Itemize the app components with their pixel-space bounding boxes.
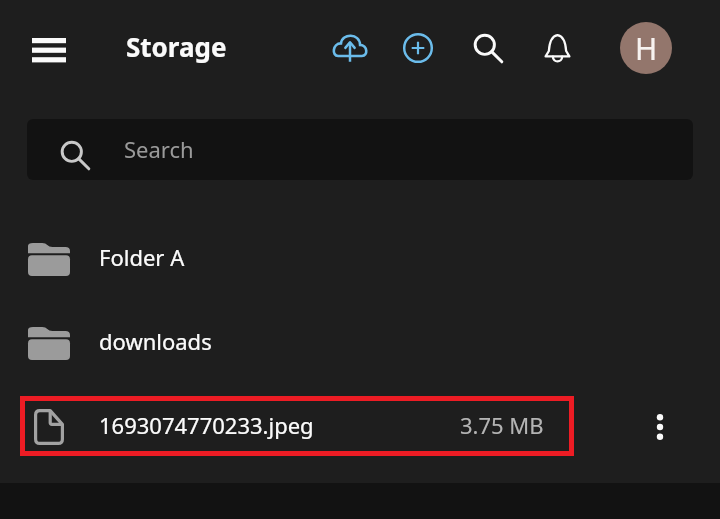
- staticText: Folder A: [99, 242, 185, 272]
- staticText: Search: [124, 134, 194, 164]
- button[interactable]: Search: [464, 24, 512, 72]
- button[interactable]: downloads: [0, 301, 720, 385]
- button[interactable]: 1693074770233.jpeg: [0, 385, 720, 469]
- button[interactable]: More options: [637, 404, 683, 450]
- staticText: downloads: [99, 326, 212, 356]
- staticText: 3.75 MB: [460, 410, 544, 440]
- staticText: 1693074770233.jpeg: [99, 410, 314, 440]
- button[interactable]: Upload: [325, 22, 374, 71]
- staticText: Storage: [126, 29, 227, 64]
- button[interactable]: Profile: [620, 22, 672, 74]
- button[interactable]: Notifications: [533, 24, 581, 72]
- button[interactable]: Add: [394, 24, 442, 72]
- staticText: H: [635, 28, 658, 69]
- button[interactable]: Folder A: [0, 217, 720, 301]
- button[interactable]: Menu: [26, 27, 72, 73]
- button[interactable]: Search files: [27, 119, 693, 180]
